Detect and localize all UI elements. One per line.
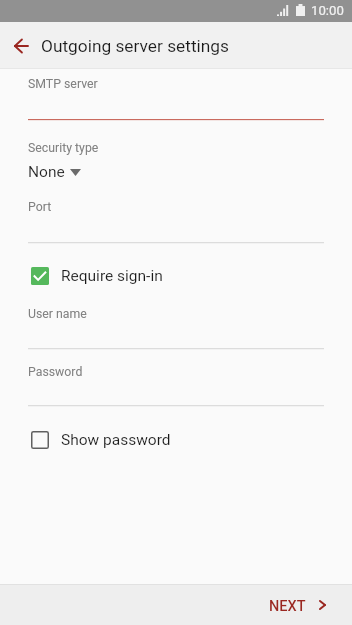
button[interactable]: NEXT — [255, 586, 344, 625]
staticText: None — [28, 163, 65, 181]
staticText: Port — [28, 200, 52, 214]
button[interactable]: None — [0, 158, 352, 186]
button[interactable]: Require sign-in — [0, 258, 352, 294]
staticText: 10:00 — [311, 3, 344, 18]
staticText: SMTP server — [28, 77, 98, 91]
staticText: NEXT — [269, 598, 306, 615]
staticText: Require sign-in — [61, 267, 163, 285]
button[interactable]: Show password — [0, 422, 352, 458]
staticText: Security type — [28, 141, 99, 155]
staticText: Password — [28, 365, 83, 379]
button[interactable]: Navigate up — [0, 22, 42, 69]
staticText: Outgoing server settings — [41, 36, 229, 56]
staticText: Show password — [61, 431, 171, 449]
staticText: User name — [28, 307, 87, 321]
